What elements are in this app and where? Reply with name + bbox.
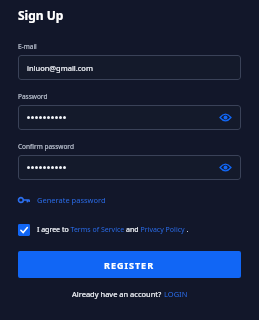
button[interactable]: Show password (18, 105, 241, 130)
staticText: Password (18, 92, 48, 101)
staticText: Generate password (37, 195, 106, 205)
button[interactable]: LOGIN (164, 289, 188, 299)
button[interactable]: Show confirm password (18, 155, 241, 180)
button[interactable]: Generate password (18, 194, 106, 206)
staticText: inluon@gmail.com (27, 63, 93, 73)
staticText: LOGIN (164, 289, 188, 299)
staticText: Already have an account? (72, 289, 164, 299)
button[interactable]: REGISTER (18, 251, 241, 278)
button[interactable]: inluon@gmail.com (18, 55, 241, 80)
staticText: I agree to Terms of Service and Privacy … (37, 225, 189, 235)
staticText: Confirm password (18, 142, 74, 151)
button[interactable]: I agree to Terms of Service and Privacy … (18, 224, 241, 236)
button[interactable]: Show confirm password (219, 161, 232, 174)
staticText: REGISTER (104, 259, 155, 271)
staticText: Sign Up (18, 7, 64, 23)
button[interactable]: Show password (219, 111, 232, 124)
staticText: E-mail (18, 42, 37, 51)
